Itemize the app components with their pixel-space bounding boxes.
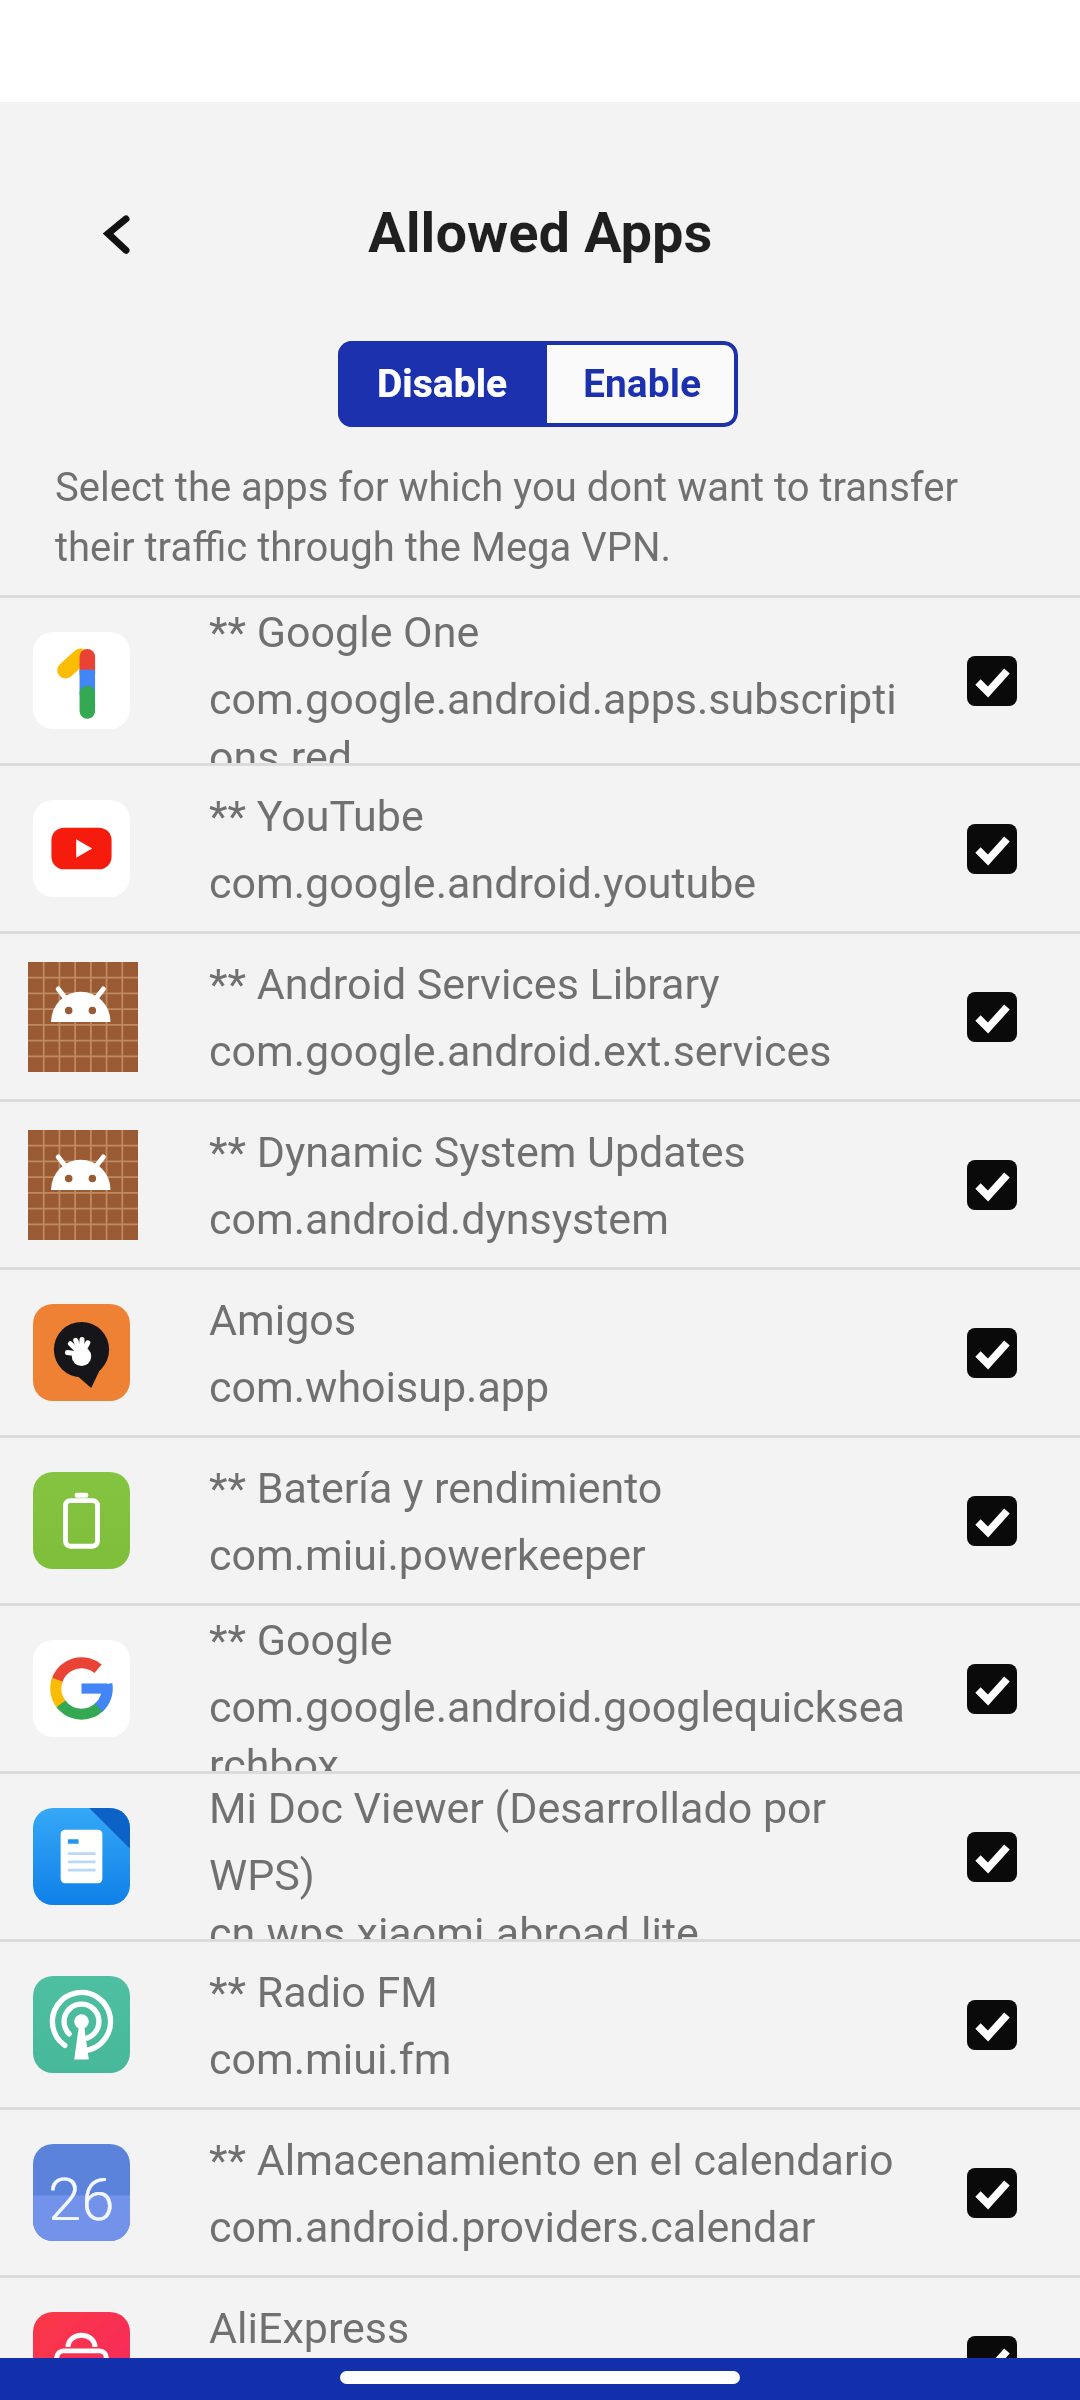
staticText: com.google.android.youtube (209, 858, 757, 908)
staticText: com.miui.fm (209, 2034, 452, 2084)
button[interactable]: Enable (547, 341, 738, 427)
button[interactable] (967, 1664, 1017, 1714)
button[interactable]: ** YouTube (0, 766, 1080, 931)
staticText: com.alibaba.aliexpresshd (209, 2370, 698, 2400)
button[interactable] (967, 1496, 1017, 1546)
button[interactable] (967, 824, 1017, 874)
staticText: Amigos (209, 1295, 357, 1345)
button[interactable]: ** Batería y rendimiento (0, 1438, 1080, 1603)
button[interactable] (967, 2000, 1017, 2050)
staticText: AliExpress (209, 2303, 410, 2353)
staticText: Disable (377, 361, 508, 407)
button[interactable] (967, 992, 1017, 1042)
staticText: Enable (583, 361, 702, 407)
button[interactable] (967, 1832, 1017, 1882)
staticText: ons.red (209, 732, 353, 763)
staticText: ** Android Services Library (209, 959, 720, 1009)
staticText: ** Google (209, 1615, 393, 1665)
staticText: 26 (48, 2164, 115, 2234)
staticText: ** Google One (209, 607, 480, 657)
button[interactable]: AliExpress (0, 2278, 1080, 2400)
staticText: ** YouTube (209, 791, 424, 841)
staticText: Select the apps for which you dont want … (55, 464, 959, 511)
staticText: Mi Doc Viewer (Desarrollado por (209, 1783, 827, 1833)
staticText: ** Almacenamiento en el calendario (209, 2135, 894, 2185)
button[interactable] (967, 2336, 1017, 2386)
button[interactable]: ** Dynamic System Updates (0, 1102, 1080, 1267)
staticText: Allowed Apps (368, 200, 713, 266)
staticText: ** Radio FM (209, 1967, 438, 2017)
staticText: com.google.android.googlequicksea (209, 1682, 905, 1732)
button[interactable]: Disable (338, 341, 547, 427)
staticText: com.whoisup.app (209, 1362, 550, 1412)
staticText: ** Batería y rendimiento (209, 1463, 663, 1513)
button[interactable]: Mi Doc Viewer (Desarrollado por (0, 1774, 1080, 1939)
staticText: com.google.android.apps.subscripti (209, 674, 897, 724)
staticText: com.android.providers.calendar (209, 2202, 816, 2252)
button[interactable]: ** Google One (0, 598, 1080, 763)
button[interactable]: ** Android Services Library (0, 934, 1080, 1099)
button[interactable] (967, 1328, 1017, 1378)
button[interactable] (967, 656, 1017, 706)
staticText: com.miui.powerkeeper (209, 1530, 646, 1580)
button[interactable]: 26 (0, 2110, 1080, 2275)
staticText: com.google.android.ext.services (209, 1026, 832, 1076)
button[interactable]: ** Google (0, 1606, 1080, 1771)
button[interactable]: ** Radio FM (0, 1942, 1080, 2107)
staticText: rchbox (209, 1740, 339, 1771)
staticText: com.android.dynsystem (209, 1194, 669, 1244)
staticText: cn.wps.xiaomi.abroad.lite (209, 1908, 699, 1939)
staticText: ** Dynamic System Updates (209, 1127, 746, 1177)
button[interactable] (85, 201, 149, 265)
staticText: their traffic through the Mega VPN. (55, 524, 672, 571)
button[interactable] (967, 1160, 1017, 1210)
button[interactable] (967, 2168, 1017, 2218)
staticText: WPS) (209, 1850, 315, 1900)
button[interactable]: Amigos (0, 1270, 1080, 1435)
